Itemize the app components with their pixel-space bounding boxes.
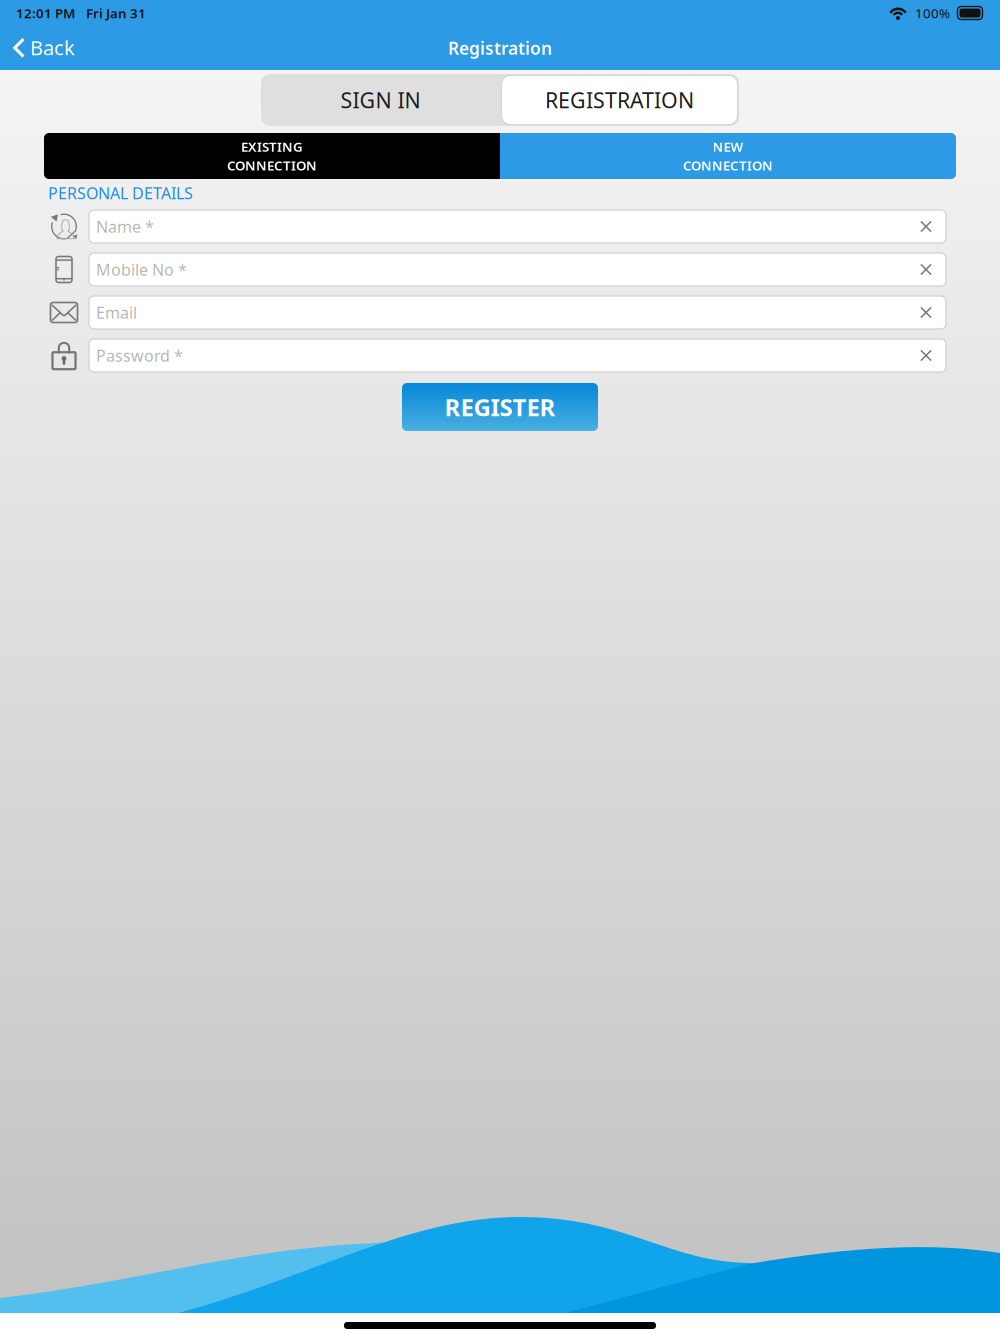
staticText: CONNECTION [227,156,317,174]
staticText: 100% [915,4,950,22]
staticText: NEW [712,138,743,155]
staticText: Password * [96,345,183,366]
staticText: PERSONAL DETAILS [48,182,193,204]
button[interactable]: Back [0,26,88,70]
staticText: CONNECTION [683,156,773,174]
button[interactable]: SIGN IN [261,74,500,126]
staticText: Mobile No * [96,259,187,280]
staticText: Name * [96,216,154,237]
button[interactable]: Clear Password * [910,339,942,372]
button[interactable]: REGISTER [402,383,598,431]
staticText: REGISTRATION [545,86,694,114]
staticText: Back [30,34,75,61]
button[interactable]: REGISTRATION [500,74,739,126]
staticText: Email [96,302,137,323]
button[interactable]: Clear Mobile No * [910,253,942,286]
staticText: EXISTING [241,138,303,155]
staticText: Registration [448,36,552,59]
staticText: SIGN IN [340,86,420,114]
button[interactable]: Clear Name * [910,210,942,243]
button[interactable]: NEW [500,133,956,179]
staticText: Fri Jan 31 [86,4,146,22]
button[interactable]: Clear Email [910,296,942,329]
staticText: 12:01 PM [16,4,75,22]
staticText: REGISTER [444,391,555,423]
button[interactable]: EXISTING [44,133,500,179]
